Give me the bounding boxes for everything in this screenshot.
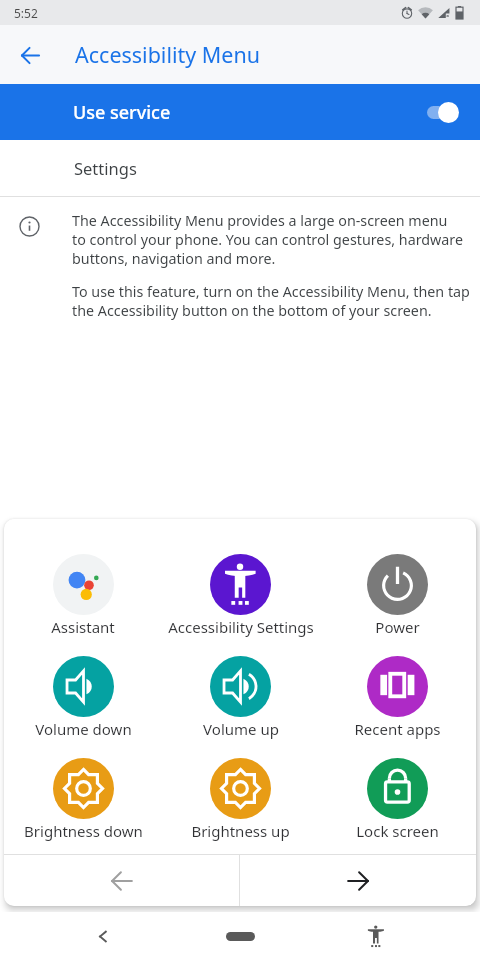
staticText: Assistant (51, 617, 115, 637)
button[interactable]: Brightness down (4, 728, 162, 830)
button[interactable]: Accessibility (352, 912, 400, 960)
staticText: Accessibility Menu (75, 40, 261, 69)
button[interactable]: Home (208, 912, 272, 960)
staticText: The Accessibility Menu provides a large … (72, 211, 464, 268)
button[interactable]: Previous page (4, 855, 239, 906)
staticText: Volume up (203, 719, 279, 739)
button[interactable]: Use service (0, 84, 480, 140)
staticText: Volume down (35, 719, 132, 739)
staticText: Brightness up (191, 821, 290, 841)
button[interactable]: Volume down (4, 626, 162, 728)
staticText: Use service (73, 100, 171, 125)
button[interactable]: Lock screen (319, 728, 476, 830)
staticText: Accessibility Settings (168, 617, 314, 637)
staticText: Power (375, 617, 420, 637)
button[interactable]: Back (6, 31, 54, 79)
button[interactable]: Next page (240, 855, 476, 906)
button[interactable]: Power (319, 524, 476, 626)
button[interactable]: Assistant (4, 524, 162, 626)
button[interactable]: Back (79, 912, 127, 960)
button[interactable]: Volume up (162, 626, 319, 728)
button[interactable]: Brightness up (162, 728, 319, 830)
staticText: To use this feature, turn on the Accessi… (72, 282, 470, 320)
button[interactable]: Accessibility Settings (162, 524, 319, 626)
button[interactable]: Settings (0, 140, 480, 196)
staticText: Lock screen (356, 821, 439, 841)
staticText: Settings (74, 157, 137, 179)
button[interactable]: Recent apps (319, 626, 476, 728)
staticText: 5:52 (14, 5, 38, 21)
staticText: Recent apps (354, 719, 441, 739)
staticText: Brightness down (24, 821, 143, 841)
